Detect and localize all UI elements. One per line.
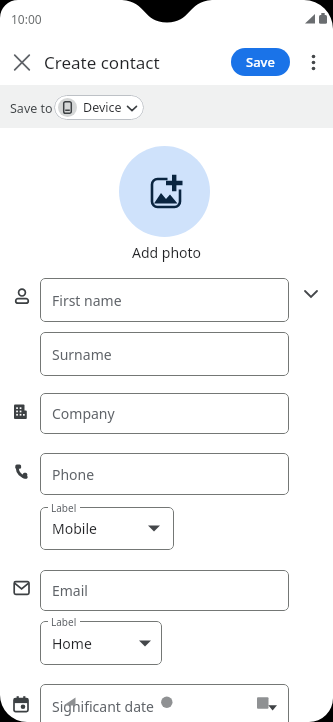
staticText: Save to [10,100,53,117]
staticText: Save [246,53,275,71]
staticText: Create contact [44,51,160,74]
button[interactable] [10,50,34,74]
staticText: Company [52,404,115,423]
button[interactable]: Significant date [40,684,289,722]
button[interactable] [305,53,323,73]
staticText: Add photo [0,243,333,262]
staticText: 10:00 [11,11,42,27]
button[interactable]: Phone [40,453,289,495]
staticText: First name [52,291,122,310]
staticText: Device [83,99,122,116]
staticText: Label [51,615,77,629]
button[interactable]: Save [231,48,290,76]
button[interactable]: Mobile [40,507,174,550]
staticText: Home [52,634,92,653]
staticText: Significant date [52,697,154,716]
button[interactable]: Home [40,621,162,665]
staticText: Mobile [52,519,97,538]
staticText: Email [52,581,88,600]
button[interactable]: Surname [40,332,289,376]
button[interactable]: Device [54,95,144,120]
staticText: Phone [52,465,95,484]
button[interactable]: Company [40,393,289,434]
staticText: Label [51,501,77,515]
button[interactable] [119,146,210,237]
button[interactable]: Email [40,570,289,611]
staticText: Surname [52,345,112,364]
button[interactable]: First name [40,278,289,322]
